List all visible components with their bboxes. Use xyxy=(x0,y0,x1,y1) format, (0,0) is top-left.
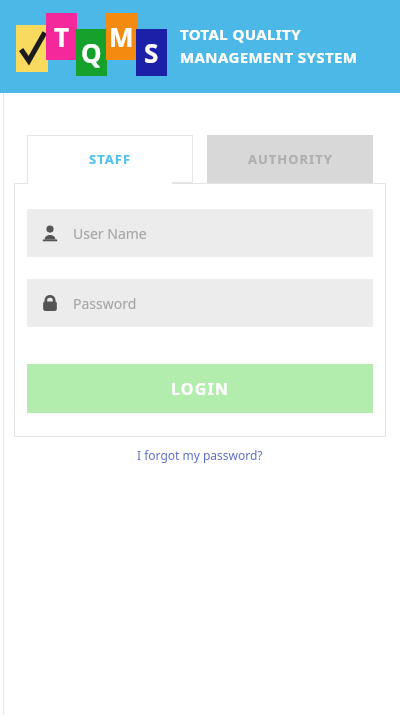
staticText: Password xyxy=(73,294,137,313)
button[interactable]: Password xyxy=(27,279,373,327)
staticText: User Name xyxy=(73,224,147,243)
other: Password xyxy=(41,294,59,312)
staticText: Q xyxy=(81,35,102,70)
staticText: I forgot my password? xyxy=(137,447,263,463)
staticText: M xyxy=(109,19,134,54)
button[interactable]: I forgot my password? xyxy=(129,443,271,467)
staticText: TOTAL QUALITY xyxy=(180,24,301,44)
staticText: S xyxy=(144,35,159,70)
button[interactable]: User name xyxy=(27,209,373,257)
staticText: AUTHORITY xyxy=(248,150,333,168)
other: User name xyxy=(41,224,59,242)
staticText: MANAGEMENT SYSTEM xyxy=(180,47,358,67)
staticText: LOGIN xyxy=(171,378,230,400)
button[interactable]: AUTHORITY xyxy=(207,135,373,183)
button[interactable]: STAFF xyxy=(27,135,193,183)
staticText: STAFF xyxy=(89,150,132,168)
button[interactable]: LOGIN xyxy=(27,364,373,413)
staticText: T xyxy=(54,19,70,54)
